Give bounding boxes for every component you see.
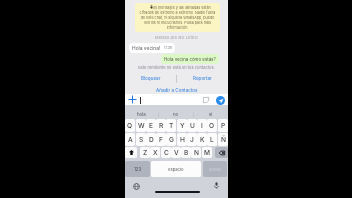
staticText: O <box>209 122 215 130</box>
staticText: 123 <box>134 167 142 172</box>
button[interactable]: Bloquear <box>125 73 176 84</box>
button[interactable]: Ñ <box>218 133 228 146</box>
button[interactable]: X <box>150 147 160 158</box>
staticText: Los mensajes y las llamadas están cifrad… <box>137 5 218 30</box>
button[interactable]: Z <box>140 147 150 158</box>
staticText: hola <box>137 112 146 117</box>
button[interactable]: D <box>146 133 156 146</box>
staticText: M <box>204 149 211 157</box>
button[interactable]: W <box>136 119 146 132</box>
staticText: S <box>139 136 144 144</box>
staticText: enviar <box>209 167 222 172</box>
staticText: P <box>221 122 226 130</box>
button[interactable]: M <box>202 147 212 158</box>
button[interactable]: enviar <box>203 161 227 177</box>
button[interactable]: O <box>207 119 217 132</box>
button[interactable]: K <box>197 133 207 146</box>
staticText: R <box>159 122 164 130</box>
button[interactable]: Mayúsculas <box>125 147 137 158</box>
staticText: X <box>153 149 158 157</box>
button[interactable]: Hola vecina cómo estás? <box>161 54 219 64</box>
staticText: E <box>149 122 153 130</box>
staticText: Y <box>180 122 185 130</box>
staticText: no <box>173 112 179 117</box>
staticText: Bloquear <box>141 76 161 82</box>
button[interactable]: espacio <box>151 161 201 177</box>
button[interactable]: Los mensajes y las llamadas están cifrad… <box>135 3 220 32</box>
button[interactable]: Borrar <box>215 147 228 158</box>
staticText: Hola vecina cómo estás? <box>164 57 216 62</box>
staticText: A <box>128 136 133 144</box>
button[interactable]: no <box>159 107 193 121</box>
button[interactable]: S <box>136 133 146 146</box>
staticText: C <box>164 149 169 157</box>
staticText: Z <box>143 149 148 157</box>
button[interactable]: E <box>146 119 156 132</box>
staticText: Este remitente no está en tus contactos. <box>138 65 215 70</box>
staticText: I <box>201 122 203 130</box>
staticText: Ñ <box>221 136 226 144</box>
button[interactable]: P <box>218 119 228 132</box>
staticText: K <box>200 136 205 144</box>
button[interactable]: N <box>191 147 201 158</box>
staticText: W <box>138 122 145 130</box>
staticText: L <box>210 136 214 144</box>
button[interactable]: Cambiar teclado <box>133 183 140 190</box>
button[interactable]: C <box>161 147 171 158</box>
button[interactable]: R <box>156 119 166 132</box>
staticText: F <box>159 136 163 144</box>
staticText: 11:28 <box>164 46 172 50</box>
staticText: Añadir a Contactos <box>156 88 198 94</box>
button[interactable]: Y <box>177 119 187 132</box>
staticText: U <box>190 122 195 130</box>
button[interactable]: A <box>125 133 135 146</box>
staticText: V <box>174 149 179 157</box>
staticText: T <box>169 122 174 130</box>
staticText: N <box>194 149 199 157</box>
button[interactable]: sí <box>194 107 228 121</box>
button[interactable]: Reportar <box>177 73 228 84</box>
button[interactable]: V <box>171 147 181 158</box>
staticText: Reportar <box>193 76 212 82</box>
button[interactable]: hola <box>125 107 158 121</box>
staticText: G <box>169 136 174 144</box>
button[interactable]: U <box>187 119 197 132</box>
staticText: H <box>180 136 185 144</box>
staticText: espacio <box>168 167 184 172</box>
staticText: J <box>190 136 194 144</box>
staticText: sí <box>209 112 213 117</box>
button[interactable]: G <box>166 133 176 146</box>
staticText: D <box>149 136 154 144</box>
button[interactable]: Stickers <box>203 97 209 103</box>
button[interactable]: Hola vecina! <box>129 43 175 53</box>
staticText: Hola vecina! <box>132 45 161 51</box>
button[interactable]: Dictar <box>213 182 220 189</box>
button[interactable]: Enviar <box>216 96 225 105</box>
button[interactable]: H <box>177 133 187 146</box>
button[interactable]: J <box>187 133 197 146</box>
staticText: B <box>184 149 189 157</box>
button[interactable]: Añadir a Contactos <box>125 87 228 95</box>
button[interactable]: B <box>181 147 191 158</box>
button[interactable]: Adjuntar <box>128 95 137 104</box>
button[interactable]: L <box>207 133 217 146</box>
staticText: Q <box>127 122 133 130</box>
button[interactable]: F <box>156 133 166 146</box>
button[interactable]: T <box>166 119 176 132</box>
button[interactable]: I <box>197 119 207 132</box>
button[interactable]: Q <box>125 119 135 132</box>
button[interactable]: 123 <box>125 161 150 177</box>
staticText: MENSAJES NO LEÍDO <box>155 35 198 40</box>
